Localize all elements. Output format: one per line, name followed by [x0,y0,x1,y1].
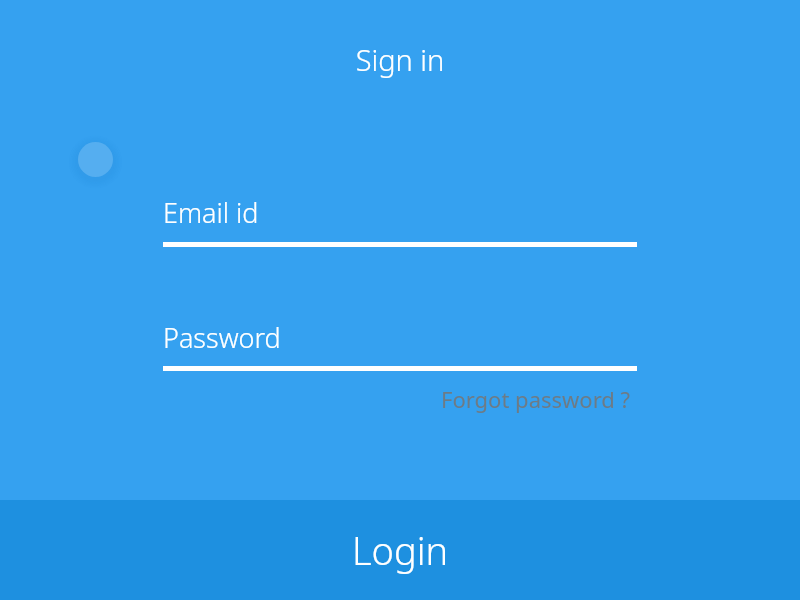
staticText: Email id [163,194,259,231]
staticText: Password [163,319,281,356]
button[interactable]: Password [163,319,637,371]
button[interactable]: Login [0,500,800,600]
other: Profile avatar [70,134,122,186]
staticText: Login [352,524,449,576]
staticText: Forgot password ? [441,384,631,414]
button[interactable]: Forgot password ? [439,382,633,416]
button[interactable]: Email id [163,194,637,247]
staticText: Sign in [0,40,800,79]
